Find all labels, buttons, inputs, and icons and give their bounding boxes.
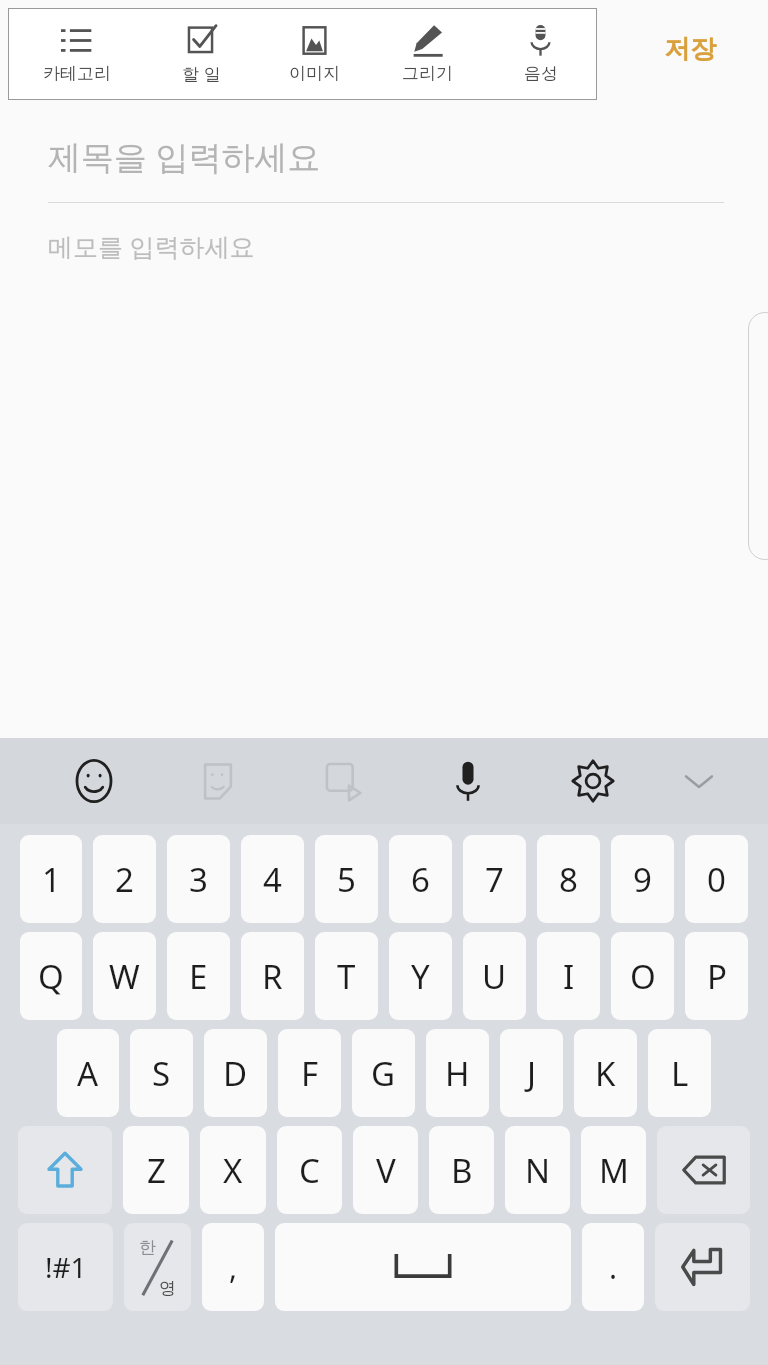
button[interactable]: Stickers (156, 738, 280, 824)
staticText: Z (147, 1148, 166, 1193)
button[interactable]: 할 일 (145, 8, 258, 100)
button[interactable]: Shift (18, 1126, 112, 1214)
button[interactable]: 이미지 (258, 8, 371, 100)
staticText: N (525, 1148, 551, 1193)
staticText: O (630, 954, 656, 999)
staticText: B (451, 1148, 473, 1193)
button[interactable]: , (202, 1223, 264, 1311)
staticText: S (152, 1051, 171, 1096)
staticText: U (482, 954, 507, 999)
button[interactable]: P (685, 932, 748, 1020)
button[interactable]: 9 (611, 835, 674, 923)
button[interactable]: Backspace (657, 1126, 750, 1214)
staticText: A (77, 1051, 99, 1096)
staticText: W (109, 954, 140, 999)
staticText: 음성 (524, 63, 558, 84)
button[interactable]: S (130, 1029, 193, 1117)
button[interactable]: H (426, 1029, 489, 1117)
button[interactable]: 1 (20, 835, 82, 923)
button[interactable]: Z (123, 1126, 189, 1214)
staticText: 1 (42, 857, 61, 902)
button[interactable]: 저장 (638, 20, 742, 78)
button[interactable]: 3 (167, 835, 230, 923)
button[interactable]: GIF (280, 738, 405, 824)
button[interactable]: 5 (315, 835, 378, 923)
staticText: !#1 (45, 1248, 87, 1286)
staticText: 3 (189, 857, 208, 902)
button[interactable]: G (352, 1029, 415, 1117)
button[interactable]: K (574, 1029, 637, 1117)
staticText: 2 (115, 857, 134, 902)
staticText: G (371, 1051, 396, 1096)
button[interactable]: F (278, 1029, 341, 1117)
button[interactable]: U (463, 932, 526, 1020)
button[interactable]: Q (20, 932, 82, 1020)
staticText: 5 (337, 857, 356, 902)
staticText: M (599, 1148, 629, 1193)
staticText: K (595, 1051, 616, 1096)
button[interactable]: Enter (655, 1223, 750, 1311)
button[interactable]: C (277, 1126, 342, 1214)
staticText: 메모를 입력하세요 (48, 229, 255, 263)
staticText: D (223, 1051, 248, 1096)
staticText: P (707, 954, 727, 999)
button[interactable]: A (57, 1029, 119, 1117)
button[interactable]: 2 (93, 835, 156, 923)
staticText: Y (411, 954, 430, 999)
button[interactable]: 0 (685, 835, 748, 923)
button[interactable]: Space (275, 1223, 571, 1311)
button[interactable]: Y (389, 932, 452, 1020)
staticText: F (301, 1051, 319, 1096)
staticText: 저장 (664, 33, 716, 66)
staticText: H (445, 1051, 470, 1096)
staticText: V (376, 1148, 396, 1193)
button[interactable]: 음성 (484, 8, 597, 100)
button[interactable]: I (537, 932, 600, 1020)
staticText: J (527, 1051, 537, 1096)
button[interactable]: J (500, 1029, 563, 1117)
staticText: 6 (411, 857, 430, 902)
staticText: 7 (485, 857, 504, 902)
staticText: . (609, 1247, 618, 1288)
button[interactable]: T (315, 932, 378, 1020)
button[interactable]: Keyboard settings (530, 738, 655, 824)
staticText: 이미지 (289, 63, 340, 84)
button[interactable]: !#1 (18, 1223, 113, 1311)
button[interactable]: M (581, 1126, 646, 1214)
button[interactable]: . (582, 1223, 644, 1311)
staticText: X (223, 1148, 243, 1193)
button[interactable]: 그리기 (371, 8, 484, 100)
button[interactable]: Emoji (32, 738, 156, 824)
button[interactable]: R (241, 932, 304, 1020)
button[interactable]: D (204, 1029, 267, 1117)
staticText: R (262, 954, 283, 999)
staticText: 한 (139, 1237, 156, 1258)
staticText: 8 (559, 857, 578, 902)
staticText: 카테고리 (43, 63, 111, 84)
button[interactable]: O (611, 932, 674, 1020)
button[interactable]: Voice input (405, 738, 530, 824)
button[interactable]: N (505, 1126, 570, 1214)
staticText: L (671, 1051, 689, 1096)
button[interactable]: 카테고리 (8, 8, 145, 100)
button[interactable]: 7 (463, 835, 526, 923)
button[interactable]: Hide keyboard (655, 738, 742, 824)
staticText: 할 일 (182, 62, 221, 85)
button[interactable]: L (648, 1029, 711, 1117)
staticText: 0 (707, 857, 726, 902)
button[interactable]: V (353, 1126, 418, 1214)
button[interactable]: W (93, 932, 156, 1020)
staticText: 4 (263, 857, 282, 902)
staticText: C (299, 1148, 320, 1193)
staticText: 9 (633, 857, 652, 902)
staticText: , (229, 1247, 238, 1288)
button[interactable]: X (200, 1126, 266, 1214)
button[interactable]: Language switch (124, 1223, 191, 1311)
staticText: I (563, 954, 575, 999)
button[interactable]: 6 (389, 835, 452, 923)
button[interactable]: 4 (241, 835, 304, 923)
button[interactable]: B (429, 1126, 494, 1214)
staticText: 그리기 (402, 63, 453, 84)
button[interactable]: 8 (537, 835, 600, 923)
button[interactable]: E (167, 932, 230, 1020)
